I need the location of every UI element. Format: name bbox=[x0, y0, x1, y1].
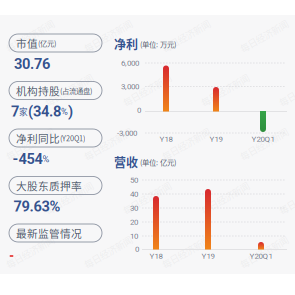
staticText: 20 bbox=[130, 217, 138, 227]
button[interactable]: 市值 bbox=[9, 34, 102, 52]
staticText: (单位: 亿元) bbox=[140, 157, 176, 167]
staticText: Y19 bbox=[209, 134, 222, 144]
staticText: 最新监管情况 bbox=[16, 225, 82, 241]
staticText: 每日经济新闻 bbox=[120, 83, 174, 97]
button[interactable]: 机构持股 bbox=[9, 81, 102, 99]
staticText: 家 bbox=[19, 105, 28, 118]
staticText: 每日经济新闻 bbox=[3, 245, 57, 259]
staticText: (34.8 bbox=[28, 103, 61, 120]
staticText: 每日经济新闻 bbox=[42, 83, 96, 97]
staticText: 每日经济新闻 bbox=[237, 137, 291, 151]
staticText: 10 bbox=[130, 231, 138, 241]
staticText: 大股东质押率 bbox=[16, 178, 82, 193]
staticText: (亿元) bbox=[38, 38, 56, 48]
staticText: 市值 bbox=[16, 35, 38, 51]
staticText: (Y20Q1) bbox=[60, 133, 85, 143]
staticText: 每日经济新闻 bbox=[3, 137, 57, 151]
staticText: 每日经济新闻 bbox=[42, 191, 96, 205]
staticText: 净利 bbox=[114, 35, 138, 53]
staticText: 0 bbox=[137, 105, 141, 115]
staticText: Y19 bbox=[201, 251, 214, 261]
button[interactable]: 净利同比 bbox=[9, 129, 102, 147]
staticText: (占流通盘) bbox=[60, 85, 92, 96]
staticText: 30.76 bbox=[14, 55, 50, 73]
staticText: 40 bbox=[130, 189, 138, 199]
button[interactable]: 大股东质押率 bbox=[9, 176, 102, 194]
staticText: Y20Q1 bbox=[251, 134, 274, 144]
staticText: 每日经济新闻 bbox=[159, 245, 213, 259]
staticText: ) bbox=[68, 103, 73, 120]
staticText: -3,000 bbox=[117, 128, 137, 138]
staticText: (单位: 万元) bbox=[140, 39, 176, 49]
staticText: 0 bbox=[135, 244, 139, 254]
staticText: 每日经济新闻 bbox=[3, 29, 57, 43]
staticText: 50 bbox=[130, 175, 138, 185]
staticText: 7 bbox=[11, 103, 19, 120]
staticText: 每日经济新闻 bbox=[237, 245, 291, 259]
staticText: 每日经济新闻 bbox=[159, 137, 213, 151]
staticText: -454 bbox=[12, 150, 42, 168]
staticText: Y18 bbox=[159, 134, 172, 144]
staticText: 30 bbox=[130, 203, 138, 213]
staticText: 净利同比 bbox=[16, 130, 60, 146]
staticText: 3,000 bbox=[121, 82, 139, 91]
staticText: % bbox=[61, 106, 68, 117]
staticText: 机构持股 bbox=[16, 83, 60, 98]
staticText: 每日经济新闻 bbox=[198, 83, 252, 97]
staticText: 6,000 bbox=[121, 58, 139, 68]
staticText: 每日经济新闻 bbox=[159, 29, 213, 43]
button[interactable]: 最新监管情况 bbox=[9, 224, 102, 242]
staticText: 每日经济新闻 bbox=[198, 191, 252, 205]
staticText: 每日经济新闻 bbox=[81, 29, 135, 43]
staticText: Y18 bbox=[149, 251, 162, 261]
staticText: 营收 bbox=[114, 153, 138, 171]
staticText: 每日经济新闻 bbox=[81, 137, 135, 151]
staticText: Y20Q1 bbox=[249, 251, 272, 261]
staticText: 79.63% bbox=[13, 198, 60, 215]
staticText: % bbox=[42, 153, 49, 164]
staticText: 每日经济新闻 bbox=[120, 191, 174, 205]
